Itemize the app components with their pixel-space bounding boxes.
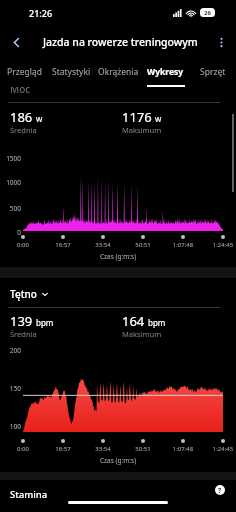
staticText: 200 — [0, 346, 21, 355]
staticText: 186 — [10, 108, 33, 126]
staticText: 1:07:48 — [163, 445, 203, 453]
staticText: 33:54 — [83, 445, 123, 453]
staticText: 16:57 — [43, 241, 83, 249]
staticText: 164 — [122, 312, 145, 330]
staticText: Sprzęt — [200, 66, 226, 78]
button[interactable]: Okrążenia — [95, 58, 142, 87]
staticText: Średnia — [10, 125, 37, 135]
staticText: 50:51 — [123, 445, 163, 453]
staticText: 0:00 — [3, 241, 43, 249]
staticText: Czas (g:m:s) — [0, 252, 236, 261]
staticText: ? — [218, 486, 222, 495]
staticText: 1500 — [0, 154, 21, 163]
staticText: 1176 — [122, 108, 152, 126]
staticText: Czas (g:m:s) — [0, 456, 236, 465]
staticText: 1:24:45 — [203, 241, 236, 249]
staticText: Jazda na rowerze treningowym — [43, 35, 198, 49]
button[interactable]: Wykresy — [142, 58, 189, 87]
button[interactable]: Back — [3, 29, 29, 55]
staticText: Stamina — [10, 488, 48, 501]
staticText: Średnia — [10, 329, 37, 339]
button[interactable]: Stamina — [0, 480, 236, 512]
button[interactable]: Statystyki — [48, 58, 95, 87]
staticText: bpm — [148, 317, 166, 328]
staticText: 50:51 — [123, 241, 163, 249]
staticText: bpm — [36, 317, 54, 328]
staticText: Maksimum — [122, 125, 162, 135]
staticText: 100 — [0, 422, 21, 431]
button[interactable]: Przegląd — [0, 58, 48, 87]
staticText: w — [36, 113, 43, 124]
button[interactable]: Tętno — [10, 287, 49, 301]
staticText: 0:00 — [3, 445, 43, 453]
button[interactable]: Info — [212, 482, 228, 498]
staticText: 26 — [204, 9, 211, 17]
staticText: 139 — [10, 312, 33, 330]
staticText: 0 — [0, 228, 21, 237]
staticText: 150 — [0, 384, 21, 393]
staticText: 21:26 — [29, 7, 53, 19]
staticText: Maksimum — [122, 329, 162, 339]
staticText: Statystyki — [52, 66, 91, 78]
staticText: Wykresy — [147, 66, 184, 78]
staticText: 1:24:45 — [203, 445, 236, 453]
staticText: 500 — [0, 204, 21, 213]
staticText: Moc — [10, 82, 31, 96]
staticText: Okrążenia — [98, 66, 139, 78]
staticText: Przegląd — [7, 66, 42, 78]
staticText: 1000 — [0, 178, 21, 187]
staticText: 1:07:48 — [163, 241, 203, 249]
button[interactable]: Sprzęt — [189, 58, 236, 87]
button[interactable]: More options — [209, 30, 233, 54]
staticText: w — [155, 113, 162, 124]
staticText: Tętno — [10, 287, 37, 301]
button[interactable]: Moc — [10, 82, 31, 96]
staticText: 33:54 — [83, 241, 123, 249]
staticText: 16:57 — [43, 445, 83, 453]
